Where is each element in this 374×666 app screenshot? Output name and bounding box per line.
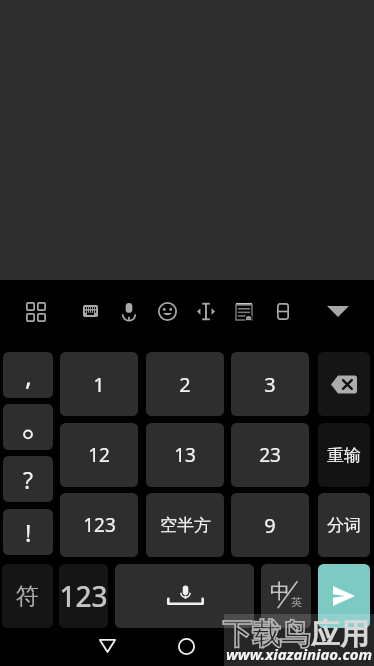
button[interactable]: Full stop [3,404,53,450]
button[interactable]: Send [318,564,370,628]
staticText: 2 [179,371,191,398]
staticText: 符 [16,582,39,611]
staticText: 分词 [327,515,361,536]
staticText: 应用 [311,616,369,653]
button[interactable]: Question mark [3,456,53,502]
staticText: 123 [59,577,108,615]
button[interactable]: Backspace [318,352,370,416]
staticText: 123 [83,512,116,538]
staticText: www.xiazainiao.com [226,644,373,664]
button[interactable]: Comma [3,352,53,398]
button[interactable]: Exclamation mark [3,509,53,555]
button[interactable]: Clipboard [228,295,260,328]
staticText: 13 [174,442,196,468]
staticText: 12 [88,442,110,468]
button[interactable]: Hide keyboard [319,298,357,325]
button[interactable]: 符 [2,564,53,628]
staticText: 23 [259,442,281,468]
button[interactable]: 分词 [318,493,370,557]
button[interactable]: 1 [60,352,138,416]
button[interactable]: 123 [60,493,138,557]
button[interactable]: Back [87,632,127,660]
button[interactable]: 23 [231,423,309,487]
staticText: ! [25,516,32,549]
button[interactable]: Switch Chinese English [261,564,311,628]
button[interactable]: Voice input [113,294,145,329]
staticText: , [25,358,32,393]
staticText: 下载鸟 [223,616,310,653]
staticText: 3 [264,371,276,398]
staticText: 空半方 [160,515,211,536]
staticText: 中 [270,579,290,604]
staticText: ? [23,464,33,495]
button[interactable]: Move cursor [189,294,223,329]
button[interactable]: 9 [231,493,309,557]
button[interactable]: 2 [146,352,224,416]
button[interactable]: Space [115,564,254,628]
button[interactable]: Apps [18,294,54,330]
button[interactable]: 13 [146,423,224,487]
button[interactable]: 3 [231,352,309,416]
button[interactable]: Emoji [150,294,185,329]
button[interactable]: 重输 [318,423,370,487]
button[interactable]: 空半方 [146,493,224,557]
button[interactable]: Split keyboard [269,295,297,328]
staticText: 9 [264,512,276,539]
staticText: 1 [93,371,105,398]
button[interactable]: Home [166,632,206,660]
button[interactable]: Keyboard [75,297,106,325]
button[interactable]: 12 [60,423,138,487]
button[interactable]: 123 [59,564,108,628]
staticText: 英 [291,595,302,609]
staticText: 重输 [327,445,361,466]
